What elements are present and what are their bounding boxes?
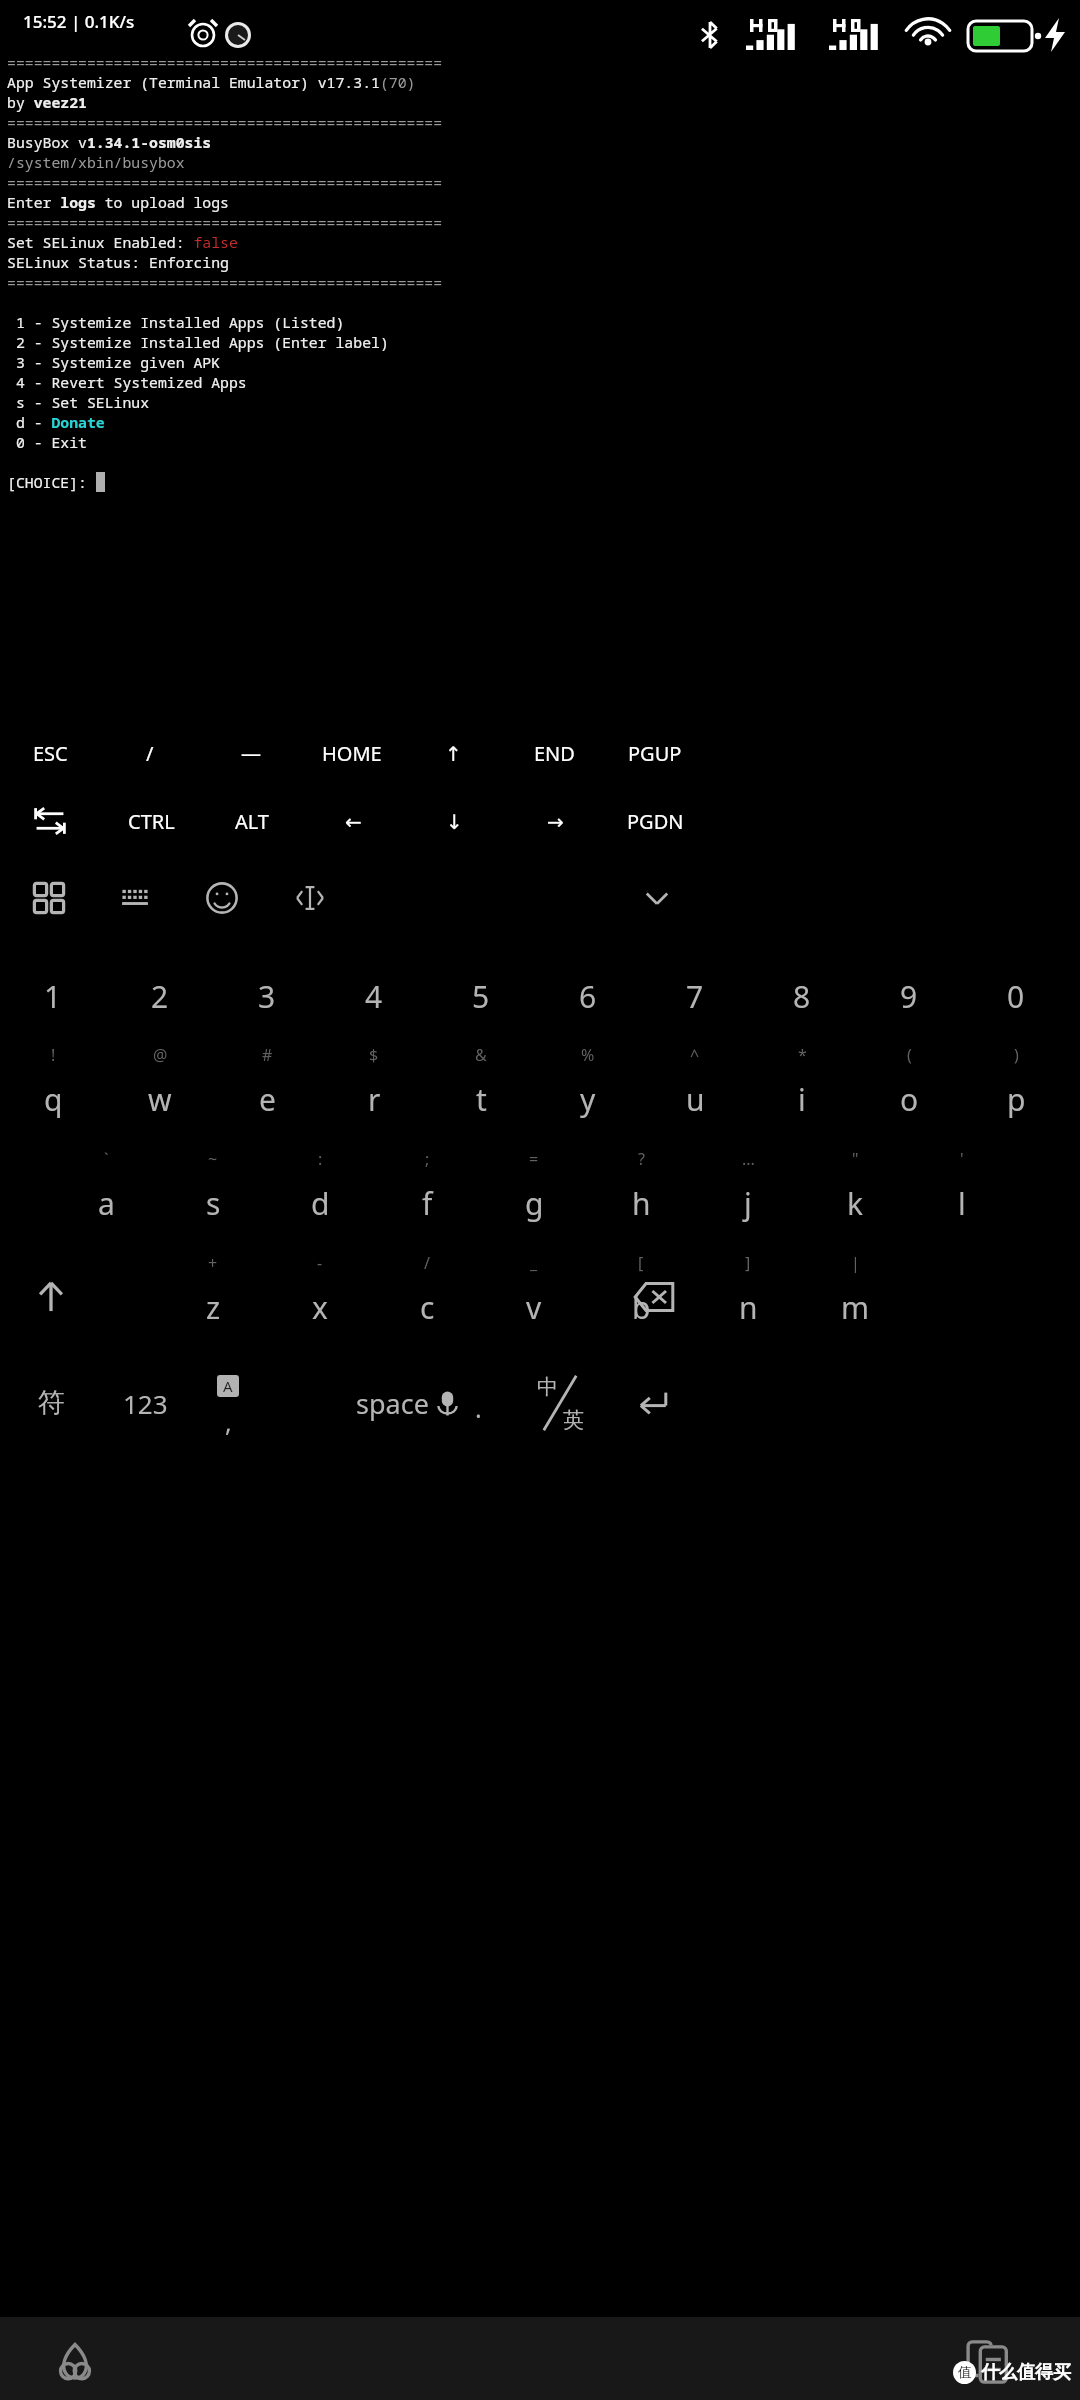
button[interactable]: ? [588,1142,694,1246]
button[interactable]: ALT [204,795,300,847]
staticText: [CHOICE]: [7,472,96,492]
button[interactable]: ] [695,1246,801,1350]
staticText: 123 [123,1386,168,1421]
button[interactable]: 中 [505,1348,615,1458]
button[interactable]: - [267,1246,373,1350]
staticText: j [744,1183,752,1224]
staticText: ` [104,1148,109,1170]
button[interactable]: 1 [0,948,106,1044]
button[interactable]: : [267,1142,373,1246]
button[interactable]: Hide keyboard [625,866,689,930]
button[interactable]: ( [856,1038,962,1142]
button[interactable]: / [374,1246,480,1350]
button[interactable]: Keyboard layout [103,866,167,930]
button[interactable]: ← [305,795,401,847]
button[interactable]: — [203,727,299,779]
button[interactable]: Assistant [40,2327,110,2397]
staticText: s [206,1183,221,1224]
staticText: A [223,1376,233,1396]
staticText: 15:52 | 0.1K/s [23,10,135,33]
button[interactable]: | [802,1246,908,1350]
staticText: ... [742,1148,755,1170]
button[interactable]: Tab [2,795,98,847]
staticText: BusyBox v1.34.1-osm0sis [7,132,212,152]
button[interactable]: $ [321,1038,427,1142]
staticText: ) [1014,1044,1019,1066]
button[interactable]: ... [695,1142,801,1246]
button[interactable]: 7 [642,948,748,1044]
staticText: 值 [958,2364,972,2382]
staticText: s - Set SELinux [7,392,150,412]
button[interactable]: A [176,1351,280,1455]
button[interactable]: ~ [160,1142,266,1246]
staticText: ? [638,1148,645,1170]
button[interactable]: " [802,1142,908,1246]
button[interactable]: . [433,1356,523,1460]
button[interactable]: ! [0,1038,106,1142]
button[interactable]: _ [481,1246,587,1350]
staticText: k [847,1183,864,1224]
button[interactable]: CTRL [103,795,199,847]
staticText: e [259,1079,276,1120]
staticText: , [225,1405,232,1439]
button[interactable]: Backspace [602,1245,706,1349]
staticText: ( [907,1044,912,1066]
staticText: # [262,1044,273,1066]
button[interactable]: 5 [428,948,534,1044]
button[interactable]: ↓ [406,795,502,847]
button[interactable]: 4 [321,948,427,1044]
button[interactable]: ` [53,1142,159,1246]
button[interactable]: / [102,727,198,779]
button[interactable]: HOME [304,727,400,779]
button[interactable]: [ [588,1246,694,1350]
button[interactable]: 9 [856,948,962,1044]
button[interactable]: ESC [2,727,98,779]
button[interactable]: ↑ [405,727,501,779]
button[interactable]: Recents [952,2327,1022,2397]
staticText: ↓ [446,810,463,833]
staticText: z [206,1287,221,1328]
button[interactable]: Apps [17,866,81,930]
staticText: PGUP [628,740,682,767]
button[interactable]: * [749,1038,855,1142]
staticText: ^ [690,1044,700,1066]
button[interactable]: space [288,1372,524,1434]
button[interactable]: ) [963,1038,1069,1142]
staticText: 8 [793,976,811,1017]
button[interactable]: Move cursor [278,866,342,930]
staticText: c [420,1287,435,1328]
button[interactable]: Emoji [190,866,254,930]
staticText: _ [530,1252,538,1274]
button[interactable]: % [535,1038,641,1142]
button[interactable]: PGDN [607,795,703,847]
staticText: ] [745,1252,751,1274]
button[interactable]: ; [374,1142,480,1246]
button[interactable]: = [481,1142,587,1246]
staticText: | [851,1252,860,1274]
staticText: ========================================… [7,272,443,292]
button[interactable]: PGUP [607,727,703,779]
button[interactable]: Shift [0,1245,103,1349]
button[interactable]: 符 [0,1351,103,1455]
staticText: ========================================… [7,212,443,232]
staticText: HOME [322,740,382,767]
button[interactable]: 2 [107,948,213,1044]
button[interactable]: → [507,795,603,847]
button[interactable]: END [506,727,602,779]
button[interactable]: 0 [963,948,1069,1044]
staticText: ========================================… [7,112,443,132]
button[interactable]: @ [107,1038,213,1142]
button[interactable]: & [428,1038,534,1142]
staticText: 2 - Systemize Installed Apps (Enter labe… [7,332,389,352]
button[interactable]: 8 [749,948,855,1044]
button[interactable]: ' [909,1142,1015,1246]
button[interactable]: # [214,1038,320,1142]
button[interactable]: 3 [214,948,320,1044]
button[interactable]: + [160,1246,266,1350]
button[interactable]: 123 [93,1351,197,1455]
button[interactable]: ^ [642,1038,748,1142]
staticText: h [632,1183,651,1224]
button[interactable]: Enter [601,1351,705,1455]
button[interactable]: 6 [535,948,641,1044]
staticText: d - Donate [7,412,105,432]
